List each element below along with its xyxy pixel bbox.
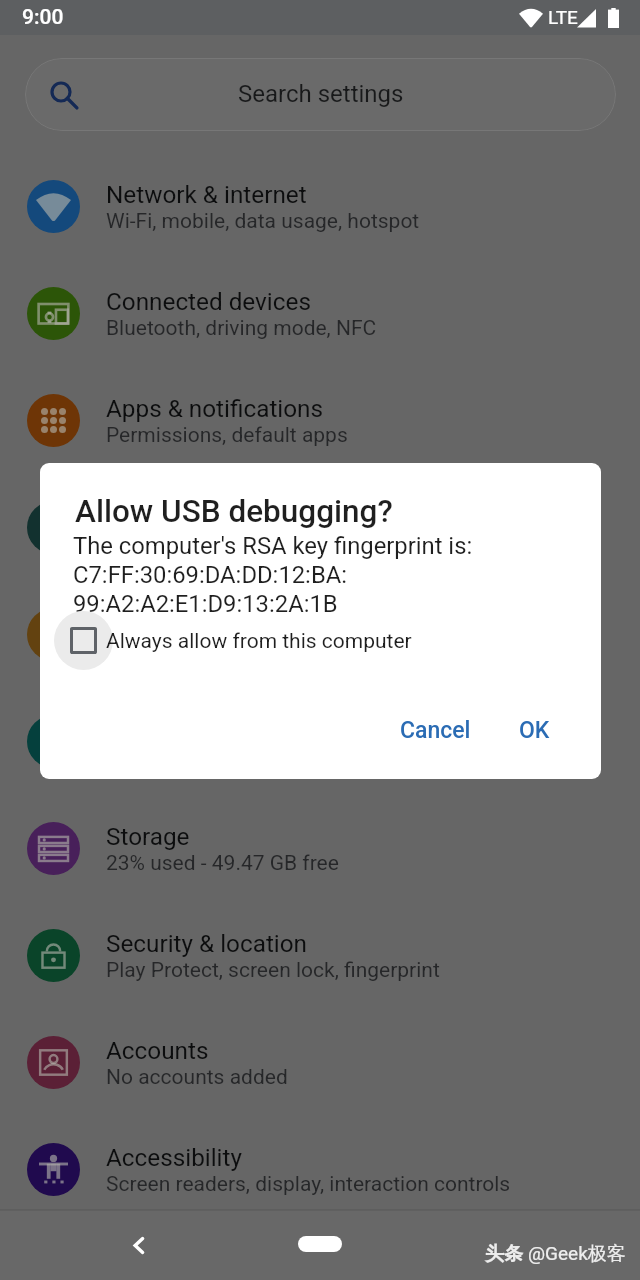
staticText: Cancel (400, 717, 471, 744)
staticText: 9:00 (22, 5, 64, 30)
staticText: Bluetooth, driving mode, NFC (106, 316, 377, 341)
button[interactable]: Apps & notifications (0, 367, 640, 474)
staticText: 85% - 3 hours left (106, 530, 267, 555)
staticText: Connected devices (106, 287, 311, 315)
staticText: Accounts (106, 1036, 209, 1064)
staticText: 23% used - 49.47 GB free (106, 851, 339, 876)
staticText: Wi-Fi, mobile, data usage, hotspot (106, 209, 420, 234)
staticText: OK (519, 717, 550, 744)
button[interactable]: Display (0, 581, 640, 688)
staticText: Search settings (238, 80, 404, 108)
staticText: Apps & notifications (106, 394, 324, 422)
staticText: Accessibility (106, 1143, 242, 1171)
staticText: No accounts added (106, 1065, 288, 1090)
staticText: Play Protect, screen lock, fingerprint (106, 958, 440, 983)
staticText: Wallpaper, sleep, font size (106, 637, 347, 662)
staticText: Battery (106, 501, 184, 529)
staticText: The computer's RSA key fingerprint is: C… (73, 532, 473, 618)
button[interactable]: Accounts (0, 1009, 640, 1116)
staticText: Storage (106, 822, 190, 850)
button[interactable]: Security & location (0, 902, 640, 1009)
staticText: Network & internet (106, 180, 307, 208)
button[interactable]: Network & internet (0, 153, 640, 260)
button[interactable]: Back (113, 1223, 157, 1267)
button[interactable]: Accessibility (0, 1116, 640, 1223)
staticText: Display (106, 608, 185, 636)
staticText: LTE (548, 6, 578, 28)
staticText: @Geek极客 (528, 1242, 626, 1266)
staticText: Always allow from this computer (106, 629, 412, 654)
button[interactable]: OK (505, 707, 564, 754)
button[interactable]: Battery (0, 474, 640, 581)
staticText: Allow USB debugging? (75, 493, 393, 530)
button[interactable]: Home (298, 1236, 342, 1252)
button[interactable]: Sound (0, 688, 640, 795)
button[interactable]: Search settings (25, 58, 616, 131)
button[interactable]: Always allow from this computer (40, 611, 601, 671)
staticText: Permissions, default apps (106, 423, 348, 448)
staticText: Security & location (106, 929, 308, 957)
staticText: Screen readers, display, interaction con… (106, 1172, 511, 1197)
button[interactable]: Storage (0, 795, 640, 902)
staticText: 头条 (485, 1242, 528, 1266)
button[interactable]: Cancel (386, 707, 485, 754)
button[interactable]: Connected devices (0, 260, 640, 367)
